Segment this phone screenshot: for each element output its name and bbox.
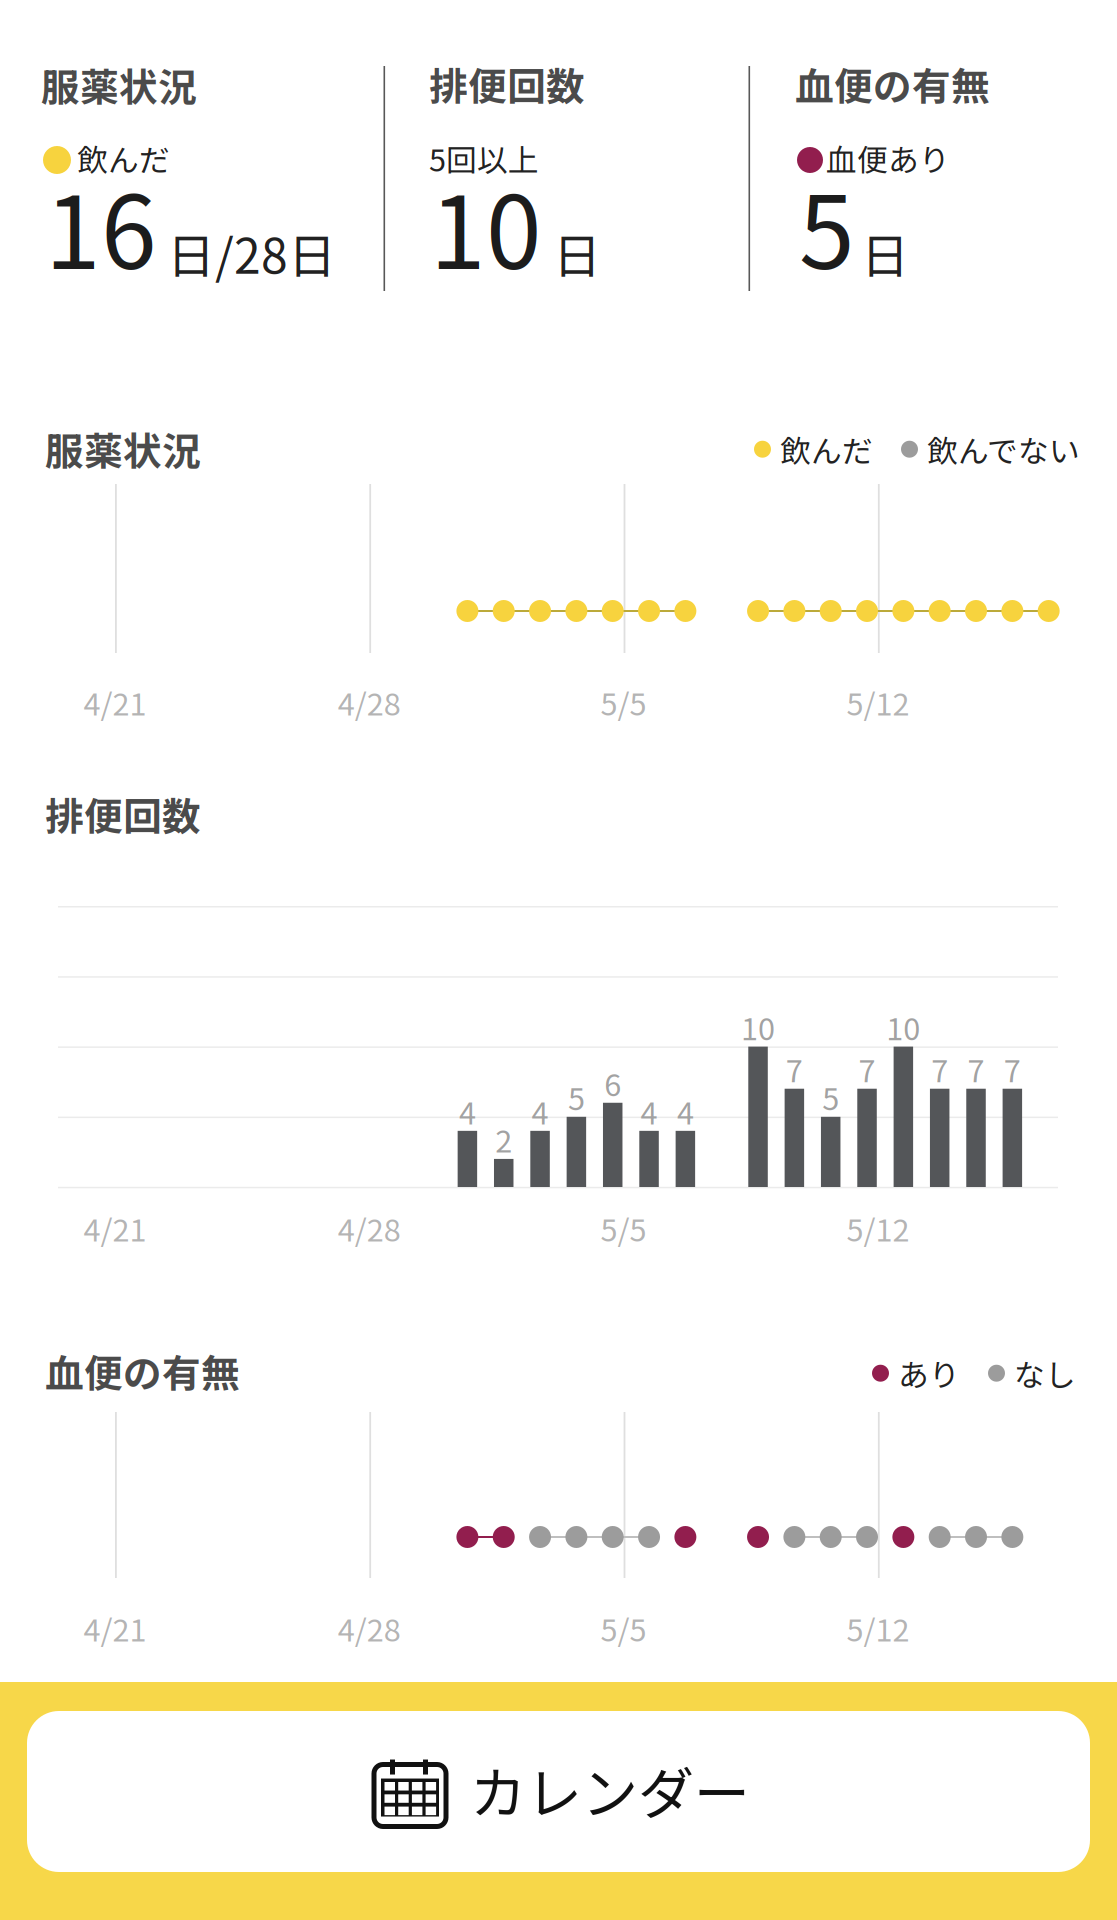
- staticText: 血便の有無: [795, 56, 990, 112]
- staticText: 血便あり: [826, 136, 950, 180]
- staticText: 5/12: [846, 680, 909, 724]
- staticText: 4/28: [338, 680, 401, 724]
- staticText: 5/5: [601, 1206, 647, 1250]
- staticText: 16: [45, 153, 157, 298]
- staticText: 排便回数: [45, 786, 201, 842]
- staticText: 日/28日: [167, 218, 336, 287]
- staticText: 5: [799, 153, 855, 298]
- staticText: 5: [568, 1075, 585, 1119]
- staticText: 飲んだ: [780, 427, 873, 471]
- staticText: 4: [532, 1089, 549, 1133]
- staticText: 5/5: [601, 1606, 647, 1650]
- staticText: 5回以上: [429, 136, 539, 180]
- staticText: 10: [741, 1005, 775, 1049]
- staticText: なし: [1014, 1351, 1076, 1395]
- staticText: 服薬状況: [45, 421, 201, 477]
- staticText: 5/12: [846, 1606, 909, 1650]
- staticText: 4/21: [83, 1206, 146, 1250]
- staticText: 7: [1004, 1047, 1021, 1091]
- staticText: 飲んでない: [927, 427, 1080, 471]
- staticText: あり: [898, 1351, 960, 1395]
- staticText: 4: [677, 1089, 694, 1133]
- staticText: 4/28: [338, 1606, 401, 1650]
- staticText: 2: [495, 1117, 512, 1161]
- staticText: 血便の有無: [45, 1343, 240, 1399]
- staticText: 7: [858, 1047, 875, 1091]
- staticText: 排便回数: [429, 56, 585, 112]
- staticText: カレンダー: [470, 1749, 750, 1830]
- staticText: 服薬状況: [41, 57, 197, 113]
- staticText: 5/12: [846, 1206, 909, 1250]
- staticText: 5/5: [601, 680, 647, 724]
- staticText: 4/21: [83, 1606, 146, 1650]
- staticText: 7: [931, 1047, 948, 1091]
- staticText: 飲んだ: [77, 136, 170, 180]
- button[interactable]: カレンダー: [27, 1711, 1090, 1872]
- staticText: 4/21: [83, 680, 146, 724]
- staticText: 4/28: [338, 1206, 401, 1250]
- staticText: 日: [553, 218, 601, 287]
- staticText: 6: [604, 1061, 621, 1105]
- staticText: 10: [430, 153, 542, 298]
- staticText: 4: [640, 1089, 657, 1133]
- staticText: 日: [861, 218, 909, 287]
- staticText: 7: [786, 1047, 803, 1091]
- staticText: 4: [459, 1089, 476, 1133]
- staticText: 5: [822, 1075, 839, 1119]
- staticText: 10: [886, 1005, 920, 1049]
- staticText: 7: [967, 1047, 984, 1091]
